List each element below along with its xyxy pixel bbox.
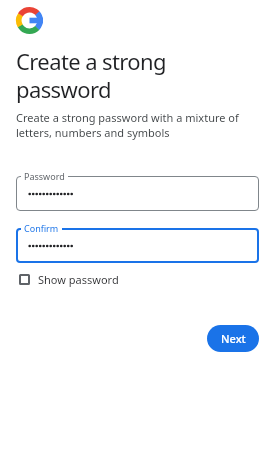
staticText: Next — [221, 331, 246, 346]
staticText: Password — [24, 170, 65, 182]
button[interactable]: Next — [207, 325, 259, 352]
staticText: Create a strong password — [16, 46, 166, 104]
staticText: Show password — [38, 272, 119, 287]
button[interactable]: Password — [16, 176, 259, 211]
button[interactable]: Confirm — [16, 228, 259, 263]
staticText: Create a strong password with a mixture … — [16, 110, 239, 140]
button[interactable]: Show password — [16, 272, 119, 287]
staticText: Confirm — [24, 222, 59, 234]
